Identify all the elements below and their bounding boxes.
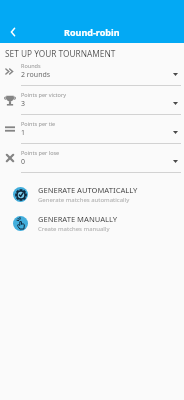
staticText: Rounds [21,62,41,69]
staticText: 2 rounds [21,70,51,80]
button[interactable]: GENERATE MANUALLY [0,209,184,238]
staticText: GENERATE AUTOMATICALLY [38,185,138,195]
button[interactable]: Rounds [0,57,184,86]
staticText: Round-robin [64,26,120,38]
staticText: 0 [21,157,26,167]
button[interactable]: Points per tie [0,115,184,144]
button[interactable]: Points per lose [0,144,184,173]
staticText: 1 [21,128,26,138]
staticText: Points per lose [21,149,60,156]
staticText: 3 [21,99,26,109]
button[interactable]: Back [0,20,26,43]
button[interactable]: Points per victory [0,86,184,115]
staticText: Create matches manually [38,225,110,233]
button[interactable]: GENERATE AUTOMATICALLY [0,180,184,209]
staticText: Points per victory [21,91,66,98]
staticText: SET UP YOUR TOURNAMENT [5,48,116,57]
staticText: Generate matches automatically [38,196,130,204]
staticText: Points per tie [21,120,56,127]
staticText: GENERATE MANUALLY [38,214,118,224]
